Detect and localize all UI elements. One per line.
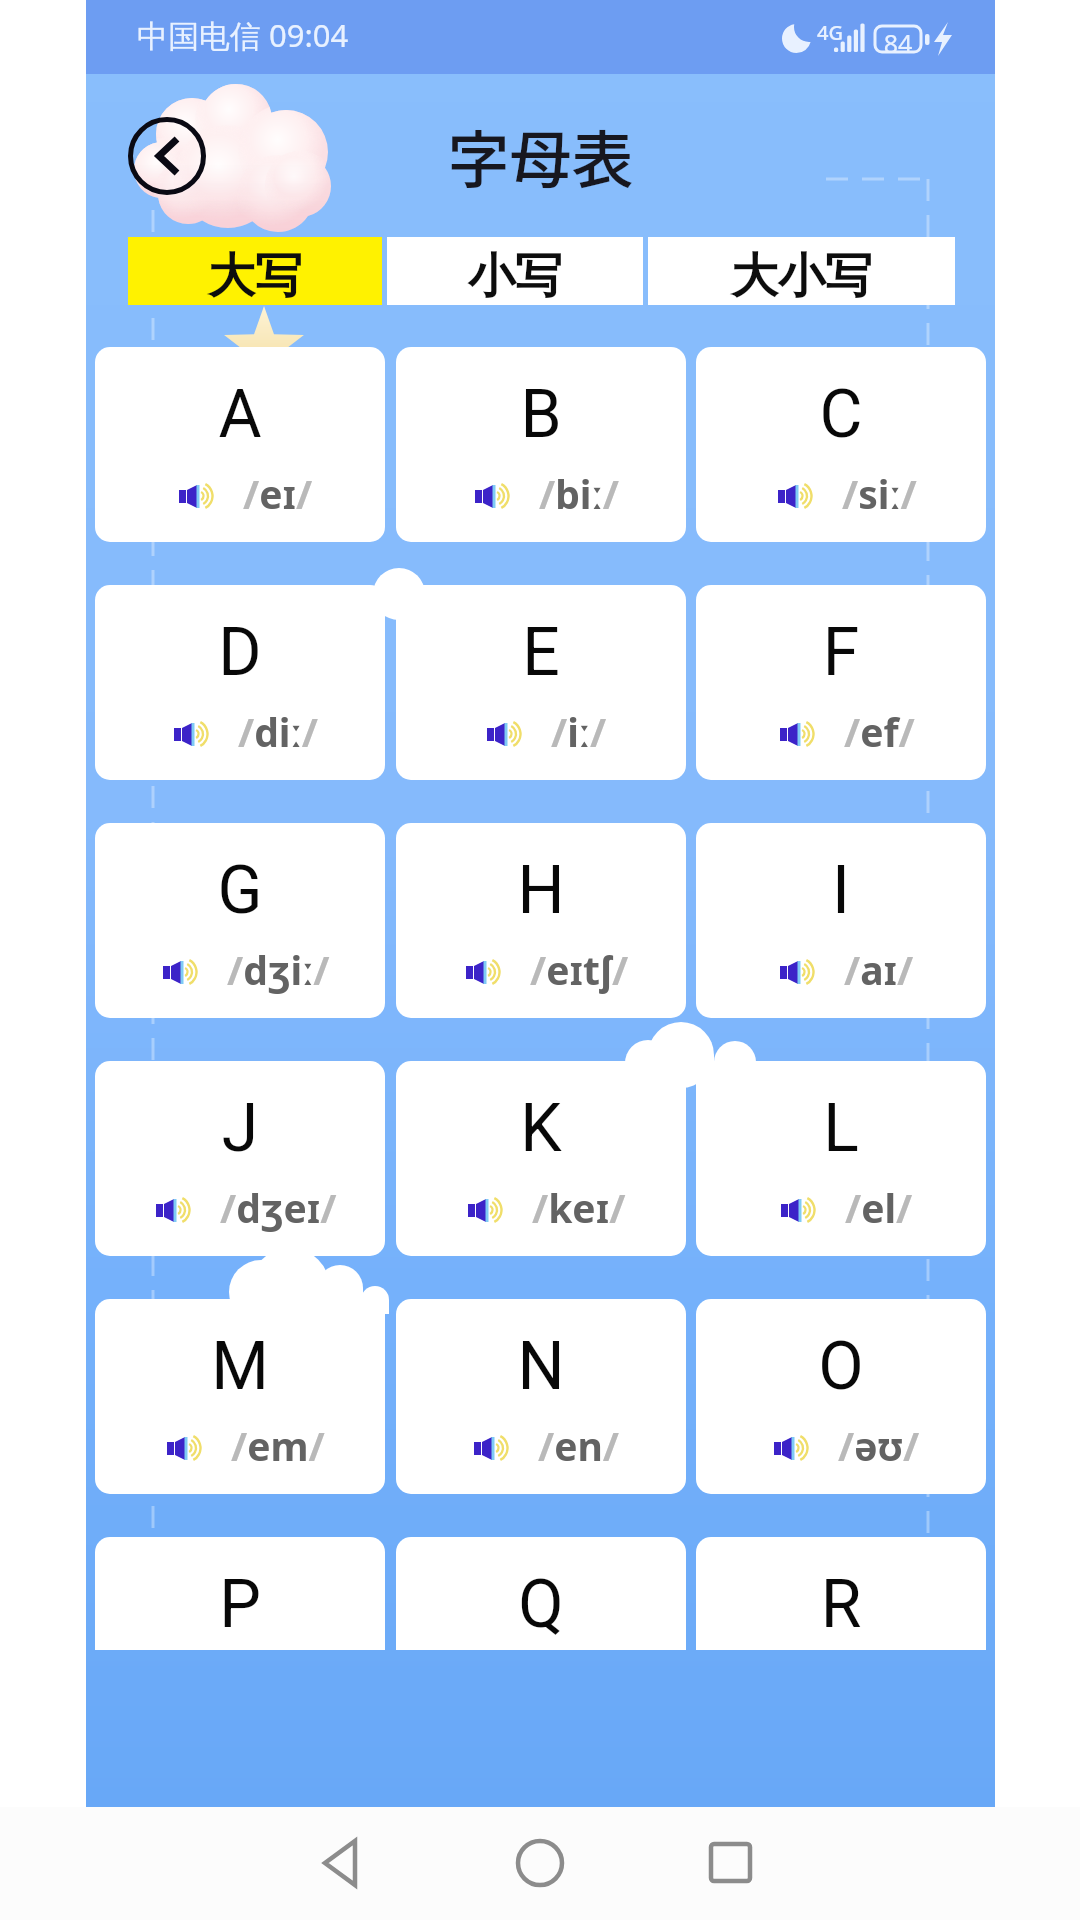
staticText: F bbox=[696, 614, 986, 691]
staticText: 大小写 bbox=[731, 247, 872, 306]
staticText: /ef/ bbox=[844, 705, 915, 758]
staticText: /en/ bbox=[538, 1419, 620, 1472]
staticText: /eɪ/ bbox=[243, 467, 313, 520]
staticText: H bbox=[396, 852, 686, 929]
button[interactable]: E bbox=[396, 585, 686, 780]
staticText: C bbox=[696, 376, 986, 453]
staticText: /keɪ/ bbox=[532, 1181, 626, 1234]
button[interactable]: Q bbox=[396, 1537, 686, 1650]
staticText: A bbox=[95, 376, 385, 453]
staticText: 字母表 bbox=[86, 111, 995, 201]
staticText: J bbox=[95, 1090, 385, 1167]
staticText: G bbox=[95, 852, 385, 929]
staticText: K bbox=[396, 1090, 686, 1167]
staticText: N bbox=[396, 1328, 686, 1405]
staticText: D bbox=[95, 614, 385, 691]
staticText: E bbox=[396, 614, 686, 691]
button[interactable]: K bbox=[396, 1061, 686, 1256]
staticText: L bbox=[696, 1090, 986, 1167]
staticText: 中国电信 09:04 bbox=[137, 14, 349, 56]
staticText: O bbox=[696, 1328, 986, 1405]
button[interactable]: I bbox=[696, 823, 986, 1018]
staticText: I bbox=[696, 852, 986, 929]
button[interactable]: 小写 bbox=[387, 237, 643, 305]
staticText: R bbox=[696, 1566, 986, 1643]
button[interactable]: Back bbox=[128, 117, 206, 195]
button[interactable]: 大写 bbox=[128, 237, 382, 305]
button[interactable]: R bbox=[696, 1537, 986, 1650]
staticText: /əʊ/ bbox=[838, 1419, 920, 1472]
button[interactable]: A bbox=[95, 347, 385, 542]
staticText: Q bbox=[396, 1566, 686, 1643]
staticText: M bbox=[95, 1328, 385, 1405]
staticText: /em/ bbox=[231, 1419, 325, 1472]
button[interactable]: B bbox=[396, 347, 686, 542]
staticText: 4G bbox=[817, 19, 843, 46]
button[interactable]: F bbox=[696, 585, 986, 780]
button[interactable]: O bbox=[696, 1299, 986, 1494]
button[interactable]: L bbox=[696, 1061, 986, 1256]
button[interactable]: M bbox=[95, 1299, 385, 1494]
staticText: /el/ bbox=[845, 1181, 913, 1234]
staticText: P bbox=[95, 1566, 385, 1643]
staticText: /biː/ bbox=[539, 467, 619, 520]
staticText: B bbox=[396, 376, 686, 453]
staticText: /aɪ/ bbox=[844, 943, 914, 996]
staticText: 84 bbox=[875, 26, 921, 60]
button[interactable]: Home bbox=[508, 1831, 572, 1895]
staticText: /siː/ bbox=[842, 467, 917, 520]
button[interactable]: D bbox=[95, 585, 385, 780]
button[interactable]: Recents bbox=[699, 1831, 763, 1895]
button[interactable]: 大小写 bbox=[648, 237, 955, 305]
button[interactable]: P bbox=[95, 1537, 385, 1650]
staticText: /dʒeɪ/ bbox=[220, 1181, 337, 1234]
button[interactable]: J bbox=[95, 1061, 385, 1256]
staticText: /eɪtʃ/ bbox=[530, 943, 629, 996]
staticText: 小写 bbox=[468, 247, 562, 306]
staticText: /dʒiː/ bbox=[227, 943, 330, 996]
button[interactable]: C bbox=[696, 347, 986, 542]
button[interactable]: G bbox=[95, 823, 385, 1018]
staticText: 大写 bbox=[208, 247, 302, 306]
button[interactable]: N bbox=[396, 1299, 686, 1494]
button[interactable]: Back bbox=[313, 1831, 377, 1895]
button[interactable]: H bbox=[396, 823, 686, 1018]
staticText: /iː/ bbox=[551, 705, 607, 758]
staticText: /diː/ bbox=[238, 705, 318, 758]
